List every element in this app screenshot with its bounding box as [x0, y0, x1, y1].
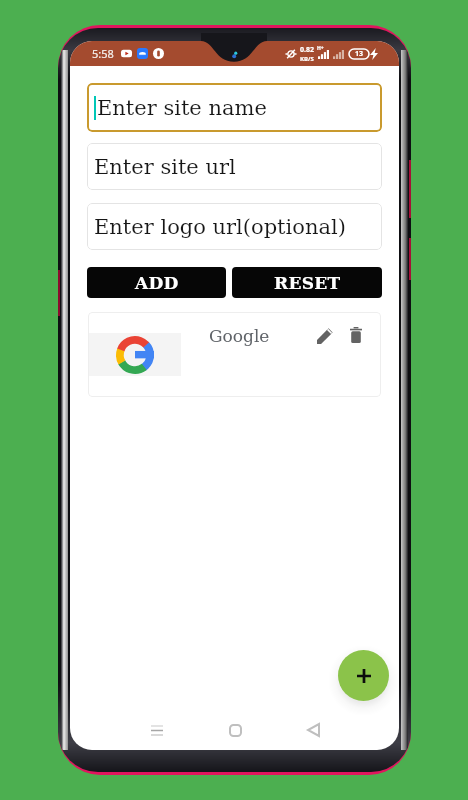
button[interactable]: ADD [87, 267, 226, 298]
button[interactable]: Delete [345, 324, 367, 346]
button[interactable]: Back [299, 716, 327, 744]
staticText: 13 [355, 49, 364, 59]
staticText: ADD [135, 273, 179, 293]
staticText: Google [209, 326, 270, 346]
button[interactable]: Google [88, 312, 381, 397]
staticText: 0.82 [300, 45, 314, 55]
button[interactable]: RESET [232, 267, 382, 298]
staticText: H+ [317, 45, 324, 52]
button[interactable]: Home [221, 716, 249, 744]
staticText: KB/S [300, 55, 314, 63]
button[interactable]: Recent apps [142, 716, 171, 745]
button[interactable]: Add site [338, 650, 389, 701]
button[interactable]: Enter logo url(optional) [87, 203, 382, 250]
staticText: RESET [274, 273, 341, 293]
button[interactable]: Enter site name [87, 83, 382, 132]
staticText: Enter site url [94, 155, 236, 179]
button[interactable]: Edit [314, 324, 336, 346]
staticText: 5:58 [92, 46, 114, 61]
staticText: Enter logo url(optional) [94, 215, 346, 239]
button[interactable]: Enter site url [87, 143, 382, 190]
staticText: Enter site name [97, 96, 267, 120]
